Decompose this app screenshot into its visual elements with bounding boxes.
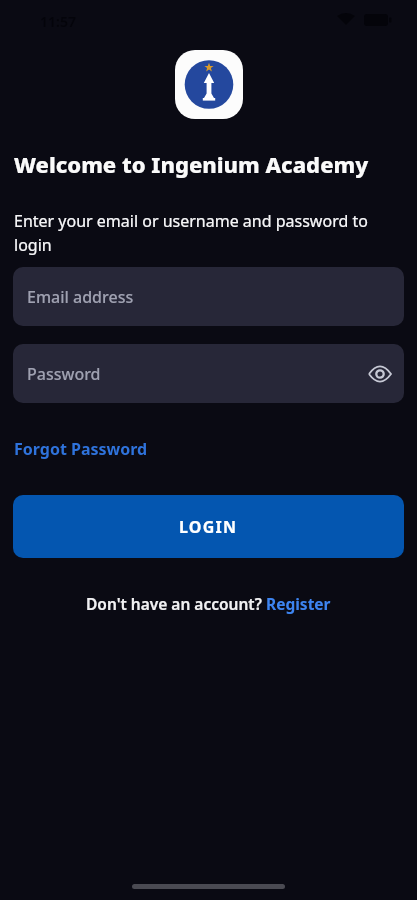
button[interactable]: Register [266,593,331,614]
staticText: Don't have an account? [86,593,266,614]
button[interactable]: Password [13,344,404,403]
staticText: Enter your email or username and passwor… [14,210,368,256]
staticText: Password [27,363,101,385]
staticText: Welcome to Ingenium Academy [14,149,369,179]
staticText: LOGIN [179,516,238,538]
staticText: Email address [27,286,134,308]
button[interactable]: Forgot Password [14,438,148,460]
button[interactable]: LOGIN [13,495,404,558]
button[interactable]: Email address [13,267,404,326]
